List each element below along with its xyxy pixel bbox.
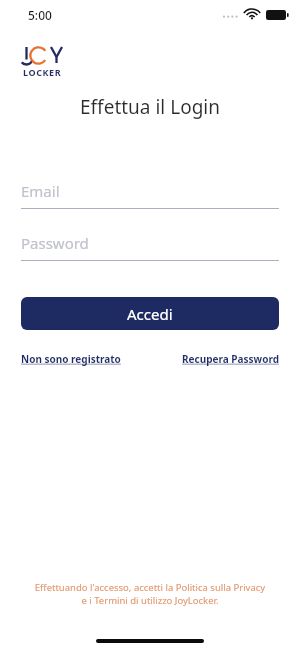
staticText: Accedi <box>127 304 173 324</box>
staticText: Non sono registrato <box>21 352 121 366</box>
staticText: LOCKER <box>23 66 62 78</box>
staticText: Effettuando l'accesso, accetti la Politi… <box>14 581 286 607</box>
button[interactable]: Email <box>21 181 279 209</box>
staticText: 5:00 <box>28 7 52 23</box>
button[interactable]: Accedi <box>21 297 279 330</box>
button[interactable]: Non sono registrato <box>21 352 121 366</box>
staticText: Email <box>21 181 60 201</box>
staticText: Effettua il Login <box>0 94 300 120</box>
button[interactable]: Recupera Password <box>182 352 279 366</box>
button[interactable]: Password <box>21 233 279 261</box>
staticText: Recupera Password <box>182 352 279 366</box>
staticText: Password <box>21 233 89 253</box>
